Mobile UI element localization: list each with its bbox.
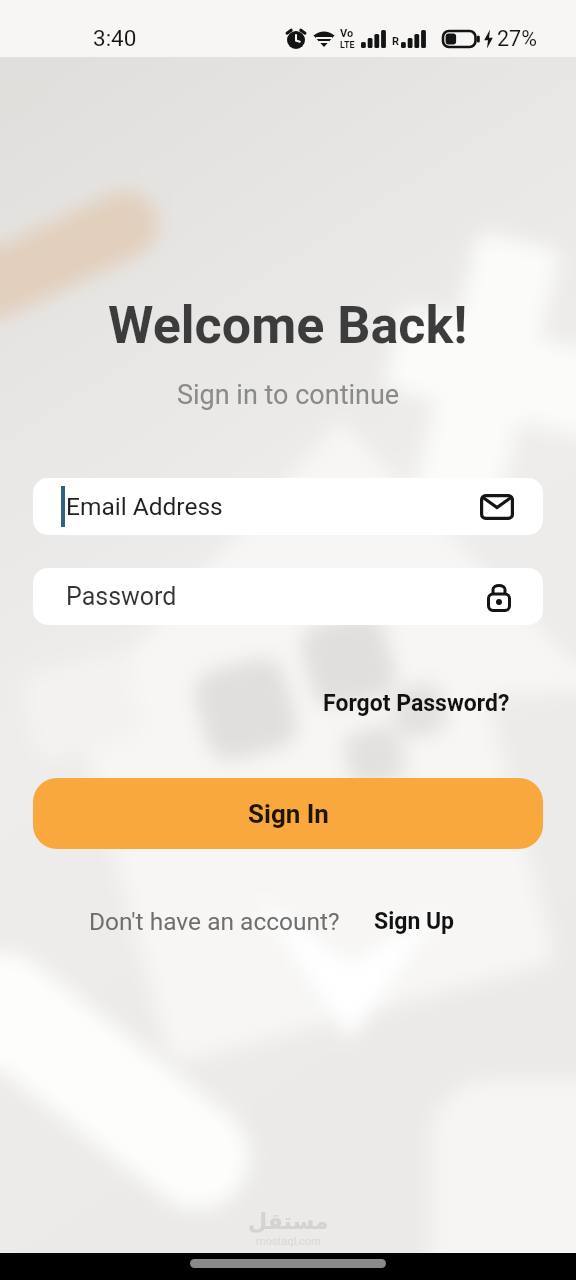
staticText: 27% [497,26,537,51]
staticText: mostaql.com [256,1235,321,1248]
button[interactable]: Password [33,568,543,625]
staticText: LTE [340,40,355,51]
staticText: Welcome Back! [108,295,468,356]
staticText: Vo [340,27,354,40]
staticText: Forgot Password? [323,690,510,717]
staticText: R [392,35,400,48]
button[interactable]: Sign Up [374,908,455,935]
button[interactable]: Sign In [33,778,543,849]
staticText: Sign In [248,799,329,829]
staticText: Password [66,582,177,611]
button[interactable]: Email Address [33,478,543,535]
staticText: 3:40 [93,25,137,51]
staticText: Sign in to continue [177,379,400,411]
staticText: Email Address [66,492,223,521]
staticText: مستقل [248,1209,329,1235]
staticText: Don't have an account? [89,907,340,936]
staticText: Sign Up [374,908,455,935]
button[interactable]: Forgot Password? [323,690,510,717]
